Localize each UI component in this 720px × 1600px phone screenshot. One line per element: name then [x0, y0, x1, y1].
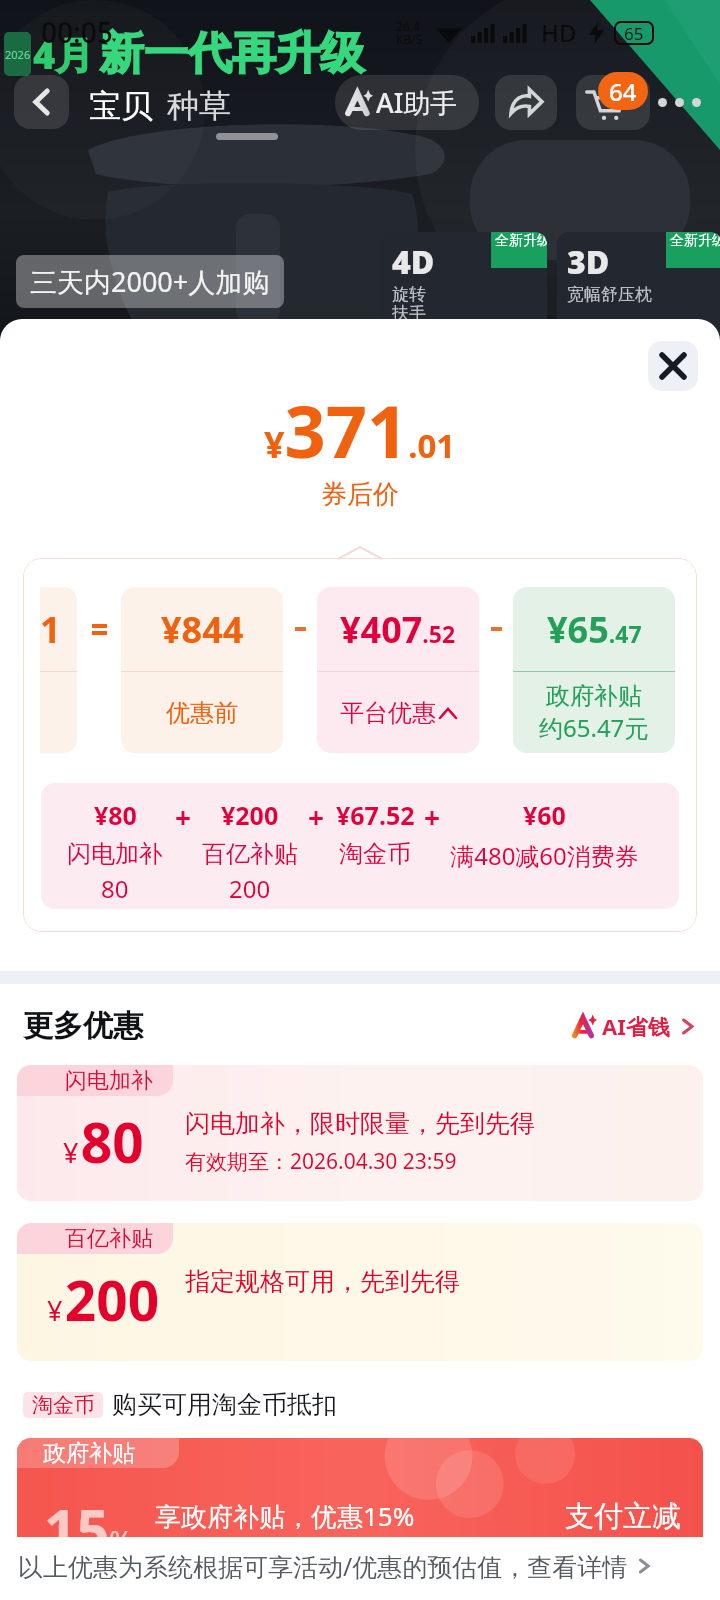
staticText: ¥407.52	[340, 605, 456, 654]
staticText: ¥80	[94, 798, 137, 832]
button[interactable]: 闪电加补	[17, 1065, 703, 1201]
button[interactable]: More options	[658, 90, 706, 114]
staticText: AI省钱	[602, 1011, 670, 1041]
staticText: 百亿补贴	[202, 839, 298, 869]
staticText: 全新升级	[495, 232, 547, 250]
button[interactable]: Close	[648, 341, 698, 391]
staticText: ¥844	[161, 605, 244, 654]
staticText: 闪电加补，限时限量，先到先得	[185, 1108, 535, 1139]
staticText: 2026	[5, 47, 31, 62]
staticText: AI助手	[376, 84, 458, 121]
staticText: ¥ 80	[63, 1104, 144, 1179]
button[interactable]: ¥407.52	[317, 587, 479, 753]
staticText: 平台优惠	[340, 698, 436, 728]
staticText: 有效期至：2026.04.30 23:59	[185, 1147, 457, 1176]
staticText: 64	[609, 75, 637, 108]
button[interactable]: 百亿补贴	[17, 1223, 703, 1361]
button[interactable]: 淘金币	[23, 1389, 720, 1420]
button[interactable]: Share	[495, 75, 557, 130]
button[interactable]: ¥65.47	[513, 587, 675, 753]
staticText: 3D	[567, 240, 610, 284]
button[interactable]: 宝贝	[89, 86, 153, 126]
staticText: +	[424, 798, 441, 828]
button[interactable]: ¥844	[121, 587, 283, 753]
staticText: 购买可用淘金币抵扣	[112, 1389, 337, 1420]
staticText: 4D	[392, 240, 435, 284]
staticText: 百亿补贴	[65, 1225, 153, 1253]
staticText: +	[175, 798, 192, 828]
staticText: 200	[229, 872, 271, 905]
staticText: ¥67.52	[336, 798, 415, 832]
staticText: 享政府补贴，优惠15%	[155, 1498, 415, 1534]
staticText: 4月	[33, 28, 94, 80]
button[interactable]: Back	[14, 75, 69, 129]
staticText: HD	[541, 16, 577, 49]
staticText: 淘金币	[339, 839, 411, 869]
staticText: 满480减60消费券	[450, 839, 639, 872]
staticText: 1	[40, 605, 61, 654]
staticText: 三天内2000+人加购	[30, 263, 270, 300]
staticText: 指定规格可用，先到先得	[185, 1266, 460, 1297]
staticText: ¥60	[523, 798, 566, 832]
staticText: 00:05	[41, 13, 113, 51]
staticText: ¥371.01	[264, 381, 456, 479]
staticText: 65	[624, 22, 644, 45]
staticText: 以上优惠为系统根据可享活动/优惠的预估值，查看详情	[18, 1549, 628, 1583]
button[interactable]: AI助手	[335, 75, 479, 130]
staticText: 补贴资金使用需服从活动结束	[155, 1542, 454, 1571]
staticText: 政府补贴	[43, 1439, 135, 1468]
button[interactable]: Cart	[576, 75, 650, 130]
staticText: 淘金币	[32, 1392, 95, 1418]
button[interactable]: 种草	[167, 86, 231, 126]
staticText: 旋转 扶手	[392, 284, 426, 324]
staticText: ¥ 200	[47, 1262, 160, 1337]
staticText: ¥200	[221, 798, 279, 832]
staticText: 全新升级	[670, 232, 720, 250]
staticText: 26.4 KB/S	[396, 18, 423, 48]
staticText: 80	[101, 872, 129, 905]
staticText: ¥65.47	[547, 605, 642, 654]
button[interactable]: 以上优惠为系统根据可享活动/优惠的预估值，查看详情	[0, 1537, 720, 1600]
staticText: 支付立减	[565, 1498, 681, 1535]
staticText: 券后价	[321, 478, 399, 511]
staticText: 优惠前	[166, 698, 238, 728]
staticText: +	[308, 798, 325, 828]
staticText: 新一代再升级	[100, 26, 364, 81]
staticText: 闪电加补	[65, 1067, 153, 1095]
staticText: 宽幅舒压枕	[567, 284, 652, 305]
staticText: 15%	[44, 1490, 133, 1568]
staticText: 闪电加补	[67, 839, 163, 869]
staticText: 更多优惠	[23, 1007, 143, 1045]
button[interactable]: AI省钱	[570, 1011, 694, 1041]
staticText: 政府补贴	[546, 681, 642, 711]
staticText: 约65.47元	[539, 711, 649, 744]
